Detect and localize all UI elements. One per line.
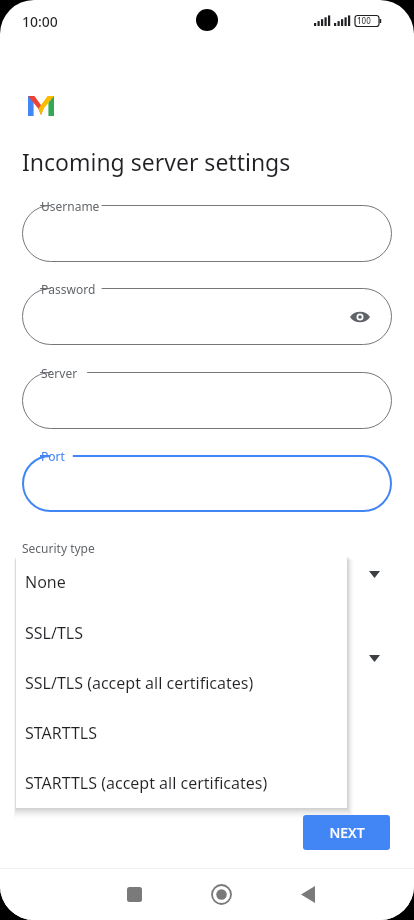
staticText: SSL/TLS xyxy=(25,622,83,644)
button[interactable]: Username xyxy=(22,205,392,262)
staticText: Incoming server settings xyxy=(22,146,291,177)
staticText: Server xyxy=(41,365,78,381)
staticText: Port xyxy=(41,448,65,464)
button[interactable]: Server xyxy=(22,372,392,429)
button[interactable]: SSL/TLS xyxy=(16,608,347,658)
button[interactable]: Back xyxy=(284,870,332,918)
button[interactable]: Port xyxy=(22,455,392,512)
staticText: Password xyxy=(41,281,96,297)
staticText: STARTTLS xyxy=(25,722,98,744)
staticText: 10:00 xyxy=(22,12,58,31)
staticText: STARTTLS (accept all certificates) xyxy=(25,772,268,794)
button[interactable]: Password xyxy=(22,288,392,345)
staticText: NEXT xyxy=(329,823,365,842)
button[interactable]: Authentication dropdown xyxy=(360,644,388,672)
button[interactable]: SSL/TLS (accept all certificates) xyxy=(16,658,347,708)
button[interactable]: Security type dropdown xyxy=(360,560,388,588)
staticText: Security type xyxy=(22,540,95,556)
button[interactable]: NEXT xyxy=(303,815,390,850)
staticText: None xyxy=(25,571,66,593)
button[interactable]: Show password xyxy=(346,303,374,331)
staticText: 100 xyxy=(357,15,371,26)
button[interactable]: Recent apps xyxy=(110,870,158,918)
button[interactable]: Home xyxy=(197,870,245,918)
button[interactable]: STARTTLS xyxy=(16,708,347,758)
staticText: SSL/TLS (accept all certificates) xyxy=(25,672,254,694)
staticText: Username xyxy=(41,198,100,214)
button[interactable]: None xyxy=(16,556,347,608)
button[interactable]: STARTTLS (accept all certificates) xyxy=(16,758,347,808)
